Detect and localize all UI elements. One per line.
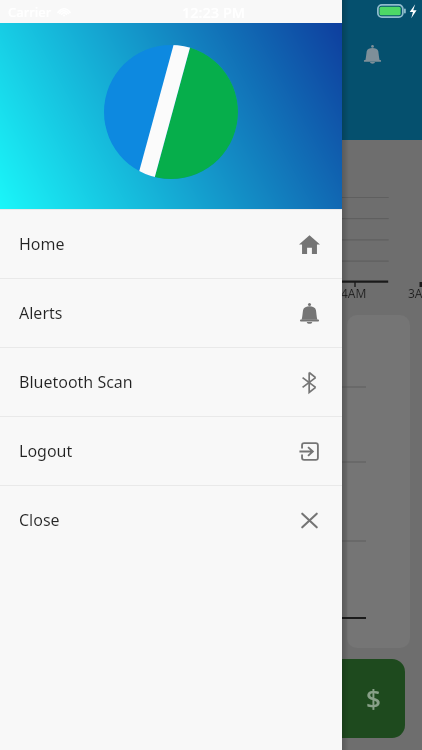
button[interactable]: Notifications	[352, 34, 392, 74]
button[interactable]: Logout	[0, 417, 342, 485]
staticText: Home	[19, 233, 65, 255]
staticText: $	[366, 680, 381, 715]
button[interactable]: Alerts	[0, 279, 342, 347]
button[interactable]: Home	[0, 210, 342, 278]
staticText: Close	[19, 509, 60, 531]
button[interactable]: $	[328, 659, 405, 738]
staticText: Logout	[19, 440, 73, 462]
staticText: Bluetooth Scan	[19, 371, 133, 393]
button[interactable]: Close	[0, 486, 342, 554]
staticText: 3AM	[408, 285, 422, 301]
staticText: Alerts	[19, 302, 63, 324]
staticText: 4AM	[341, 285, 367, 301]
button[interactable]: Bluetooth Scan	[0, 348, 342, 416]
